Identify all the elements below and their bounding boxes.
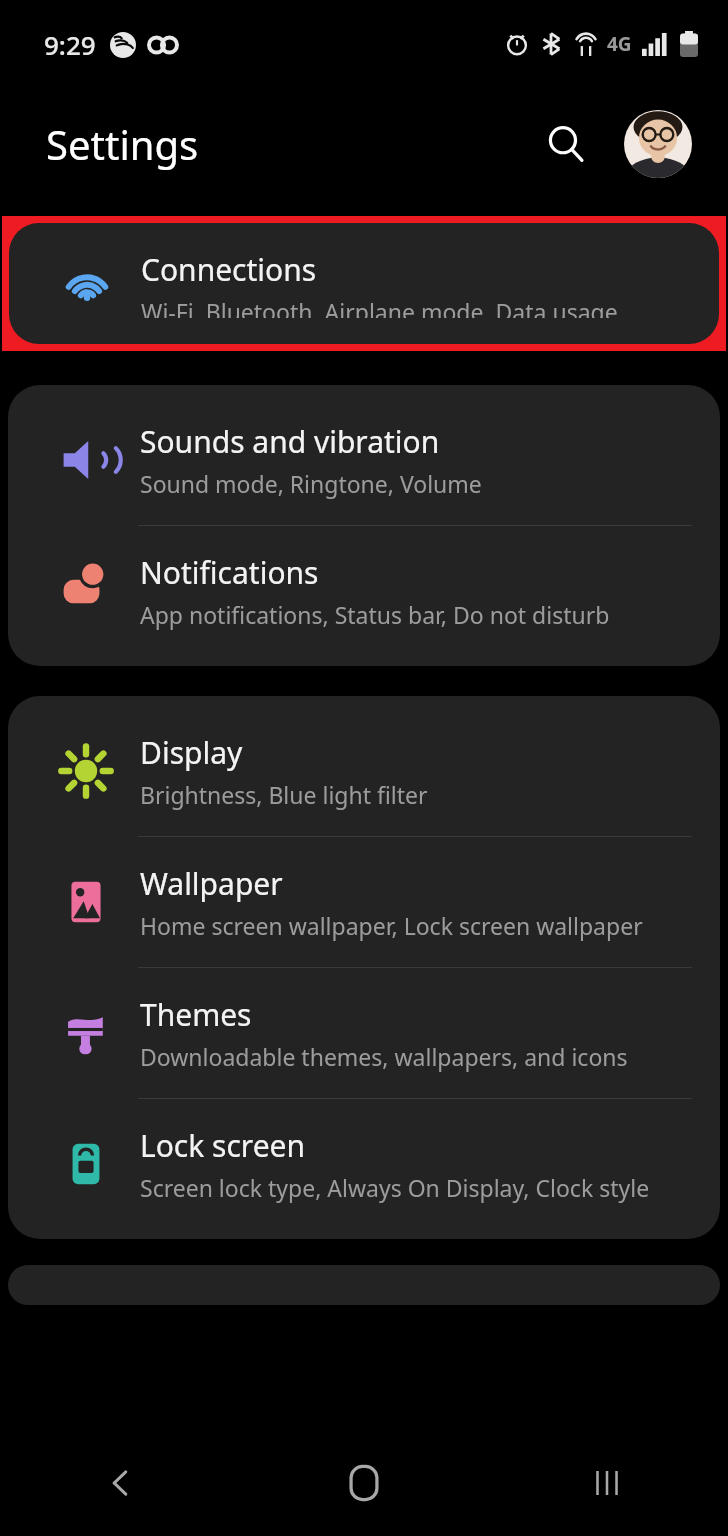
staticText: Wallpaper bbox=[140, 863, 283, 904]
staticText: App notifications, Status bar, Do not di… bbox=[140, 599, 610, 630]
staticText: Display bbox=[140, 732, 243, 773]
staticText: Downloadable themes, wallpapers, and ico… bbox=[140, 1041, 628, 1072]
staticText: Sounds and vibration bbox=[140, 421, 440, 462]
staticText: Sound mode, Ringtone, Volume bbox=[140, 468, 482, 499]
staticText: Themes bbox=[140, 994, 252, 1035]
button[interactable]: Search bbox=[534, 112, 598, 176]
staticText: Lock screen bbox=[140, 1125, 306, 1166]
button[interactable]: Notifications bbox=[8, 526, 720, 656]
button[interactable]: Connections bbox=[9, 223, 719, 344]
button[interactable]: Sounds and vibration bbox=[8, 395, 720, 525]
button[interactable]: Profile bbox=[624, 110, 692, 178]
staticText: Screen lock type, Always On Display, Clo… bbox=[140, 1172, 650, 1203]
button[interactable]: Home bbox=[242, 1430, 485, 1536]
staticText: Settings bbox=[46, 117, 199, 171]
staticText: Connections bbox=[141, 249, 317, 290]
button[interactable]: Recent apps bbox=[485, 1430, 728, 1536]
button[interactable]: Wallpaper bbox=[8, 837, 720, 967]
button[interactable]: Display bbox=[8, 706, 720, 836]
staticText: Notifications bbox=[140, 552, 319, 593]
button[interactable]: Back bbox=[0, 1430, 242, 1536]
staticText: Home screen wallpaper, Lock screen wallp… bbox=[140, 910, 643, 941]
staticText: Wi-Fi, Bluetooth, Airplane mode, Data us… bbox=[141, 296, 618, 318]
staticText: 4G bbox=[607, 31, 632, 57]
staticText: 9:29 bbox=[44, 27, 96, 62]
button[interactable]: Themes bbox=[8, 968, 720, 1098]
staticText: Brightness, Blue light filter bbox=[140, 779, 428, 810]
button[interactable]: Lock screen bbox=[8, 1099, 720, 1229]
